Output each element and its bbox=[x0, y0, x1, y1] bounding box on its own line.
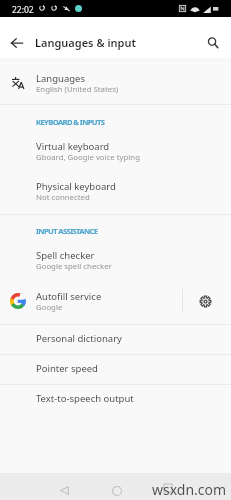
button[interactable]: Home bbox=[103, 477, 130, 500]
staticText: Virtual keyboard bbox=[36, 140, 110, 153]
button[interactable]: Autofill service bbox=[0, 282, 231, 324]
staticText: Languages & input bbox=[35, 35, 136, 50]
staticText: Google spell checker bbox=[36, 261, 112, 272]
staticText: Autofill service bbox=[36, 290, 102, 303]
staticText: 22:02 bbox=[12, 4, 34, 16]
staticText: Personal dictionary bbox=[36, 332, 122, 345]
button[interactable]: Virtual keyboard bbox=[0, 133, 231, 173]
staticText: Not connected bbox=[36, 192, 90, 203]
staticText: Spell checker bbox=[36, 249, 95, 262]
staticText: Languages bbox=[36, 72, 85, 85]
staticText: Text-to-speech output bbox=[36, 392, 134, 405]
button[interactable]: Text-to-speech output bbox=[0, 384, 231, 414]
button[interactable]: Pointer speed bbox=[0, 354, 231, 384]
staticText: wsxdn.com bbox=[152, 480, 227, 499]
button[interactable]: Personal dictionary bbox=[0, 324, 231, 354]
staticText: Physical keyboard bbox=[36, 180, 116, 193]
button[interactable]: Languages bbox=[0, 65, 231, 104]
button[interactable]: Recent apps bbox=[154, 474, 181, 500]
staticText: Pointer speed bbox=[36, 362, 98, 375]
button[interactable]: Physical keyboard bbox=[0, 173, 231, 213]
staticText: Google bbox=[36, 302, 63, 313]
button[interactable]: Back bbox=[51, 477, 78, 500]
staticText: KEYBOARD & INPUTS bbox=[36, 117, 105, 127]
staticText: English (United States) bbox=[36, 84, 119, 95]
staticText: Gboard, Google voice typing bbox=[36, 152, 140, 163]
button[interactable]: Autofill service settings bbox=[183, 282, 231, 324]
button[interactable]: Back bbox=[11, 37, 23, 49]
staticText: INPUT ASSISTANCE bbox=[36, 226, 98, 236]
button[interactable]: Spell checker bbox=[0, 242, 231, 282]
button[interactable]: Search bbox=[207, 37, 219, 49]
